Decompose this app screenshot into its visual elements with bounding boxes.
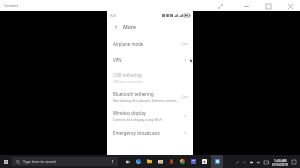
staticText: Wireless display — [113, 110, 146, 116]
button[interactable]: App — [166, 155, 177, 168]
button[interactable]: Battery — [262, 158, 270, 166]
staticText: Airplane mode — [113, 41, 144, 47]
button[interactable]: Back — [111, 22, 120, 31]
staticText: USB tethering — [113, 72, 142, 78]
button[interactable]: Show hidden icons — [233, 158, 241, 166]
staticText: 9:41 — [110, 14, 117, 18]
button[interactable]: Full screen — [213, 1, 227, 11]
staticText: Emergency broadcasts — [113, 130, 160, 136]
staticText: Type here to search — [23, 159, 57, 164]
staticText: VPN — [113, 57, 122, 63]
staticText: 1:44 AM — [274, 158, 287, 162]
button[interactable]: Photos — [199, 155, 210, 168]
button[interactable]: Teams — [188, 155, 199, 168]
button[interactable]: Microsoft Store — [155, 155, 166, 168]
button[interactable]: File Explorer — [144, 155, 155, 168]
button[interactable]: Bluetooth tethering toggle — [179, 92, 189, 102]
button[interactable]: Airplane mode — [107, 36, 193, 52]
button[interactable]: Chrome — [177, 155, 188, 168]
button[interactable]: Volume — [255, 159, 262, 166]
button[interactable]: Connect window — [211, 155, 223, 168]
button[interactable]: Type here to search — [12, 157, 118, 166]
button[interactable]: 1:44 AM — [270, 158, 290, 166]
staticText: 5/16/2019 — [272, 162, 288, 166]
button[interactable]: USB tethering — [107, 68, 193, 87]
staticText: Not sharing this phone's Internet connec… — [113, 98, 179, 102]
button[interactable]: Network — [248, 159, 255, 166]
staticText: Connect to a display using Wi-Fi — [113, 117, 163, 121]
staticText: Connect — [4, 3, 18, 8]
button[interactable]: Hidden icons — [241, 159, 248, 166]
staticText: More — [123, 23, 136, 30]
button[interactable]: Microsoft Edge — [133, 155, 144, 168]
button[interactable]: Maximize — [261, 1, 275, 11]
button[interactable]: VPN — [107, 52, 193, 68]
button[interactable]: Task view — [122, 155, 133, 168]
staticText: USB not connected — [113, 79, 143, 83]
button[interactable]: Action center — [290, 158, 298, 166]
button[interactable]: Close — [283, 1, 297, 11]
button[interactable]: Wireless display — [107, 106, 193, 125]
staticText: Bluetooth tethering — [113, 91, 154, 97]
button[interactable]: Emergency broadcasts — [107, 125, 193, 141]
button[interactable]: Minimize — [239, 1, 253, 11]
button[interactable]: Bluetooth tethering — [107, 87, 193, 106]
button[interactable]: Airplane mode toggle — [179, 39, 189, 49]
button[interactable]: Start — [0, 156, 12, 168]
